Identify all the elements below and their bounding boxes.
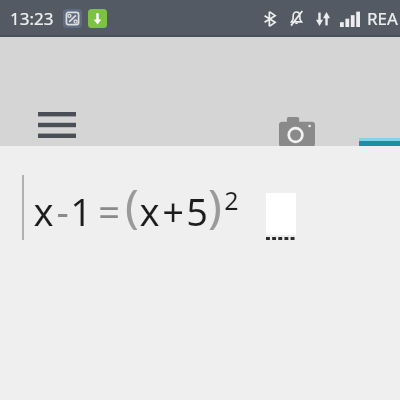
staticText: ( [125, 174, 139, 237]
staticText: 1 [70, 185, 92, 237]
staticText: x [33, 185, 54, 237]
staticText: 5 [186, 185, 208, 237]
staticText: + [162, 185, 184, 237]
staticText: - [56, 185, 69, 237]
staticText: ) [208, 174, 222, 237]
staticText: 13:23 [10, 7, 54, 30]
staticText: x [139, 185, 160, 237]
button[interactable]: Camera [272, 107, 322, 157]
staticText: 2 [224, 183, 239, 217]
button[interactable]: Menu [30, 105, 84, 145]
staticText: = [98, 185, 120, 237]
staticText: REA [367, 7, 398, 30]
